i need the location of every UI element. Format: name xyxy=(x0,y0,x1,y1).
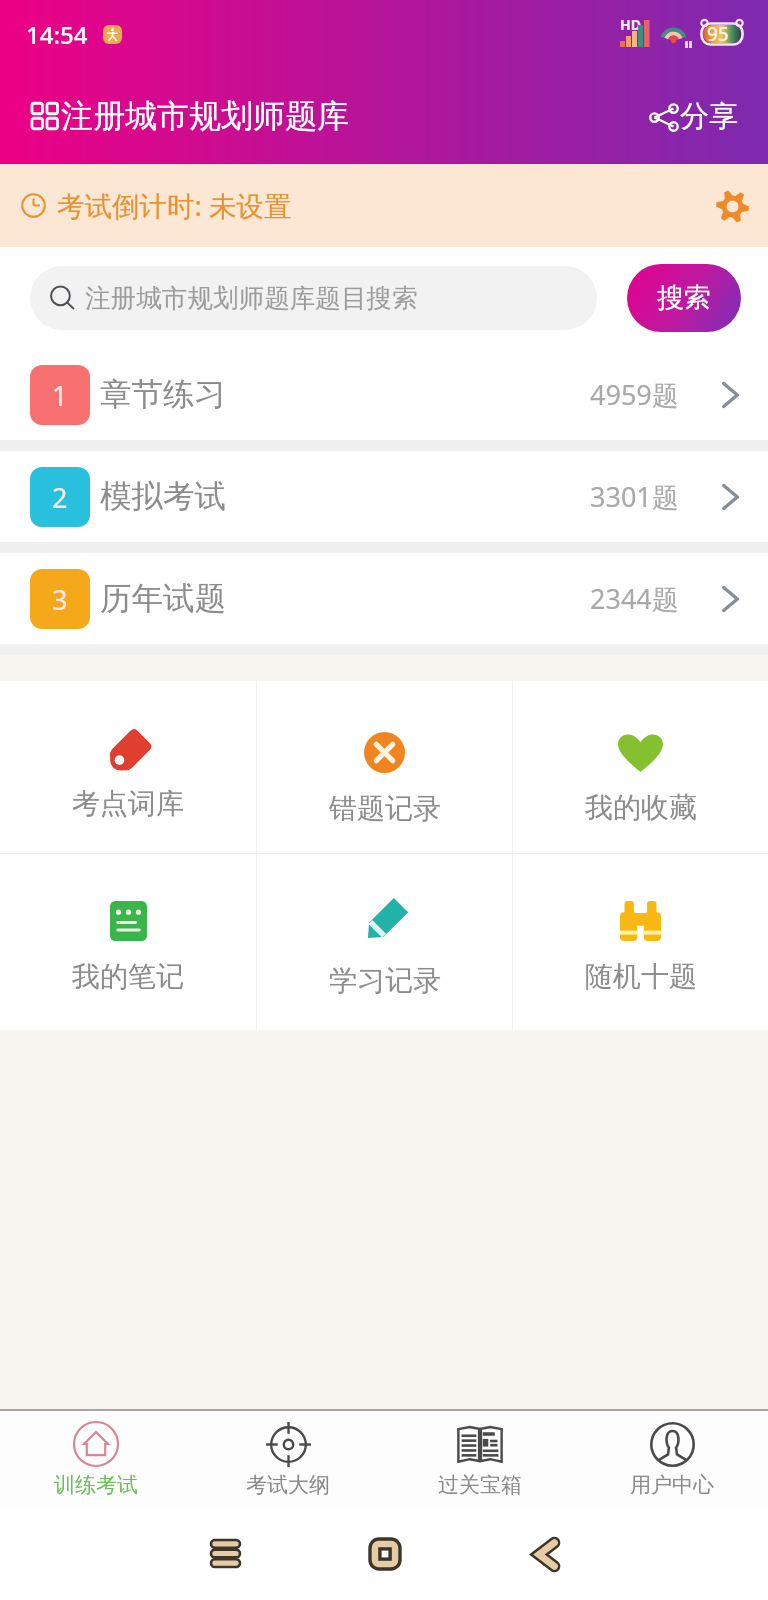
button[interactable]: Back xyxy=(521,1529,571,1579)
staticText: 分享 xyxy=(680,98,738,135)
staticText: 用户中心 xyxy=(630,1472,714,1498)
button[interactable]: Recents xyxy=(200,1529,251,1578)
staticText: 学习记录 xyxy=(329,963,441,998)
staticText: 2 xyxy=(52,479,68,516)
button[interactable]: 注册城市规划师题库题目搜索 xyxy=(30,266,597,330)
staticText: 随机十题 xyxy=(585,959,697,994)
staticText: 14:54 xyxy=(26,18,88,51)
staticText: 过关宝箱 xyxy=(438,1472,522,1498)
button[interactable]: 分享 xyxy=(646,92,742,141)
button[interactable]: Home xyxy=(360,1529,410,1579)
staticText: 模拟考试 xyxy=(100,477,226,517)
button[interactable]: 用户中心 xyxy=(576,1411,768,1507)
button[interactable]: 1 xyxy=(0,349,768,440)
staticText: 95 xyxy=(707,21,729,47)
staticText: 考点词库 xyxy=(72,786,184,821)
button[interactable]: 学习记录 xyxy=(257,854,512,1030)
button[interactable]: 训练考试 xyxy=(0,1411,192,1507)
button[interactable]: 我的笔记 xyxy=(0,854,256,1030)
staticText: 章节练习 xyxy=(100,375,226,415)
staticText: HD xyxy=(620,15,641,34)
button[interactable]: 3 xyxy=(0,553,768,644)
button[interactable]: 考试大纲 xyxy=(192,1411,384,1507)
staticText: 考试倒计时: 未设置 xyxy=(57,187,292,225)
staticText: 注册城市规划师题库 xyxy=(61,96,349,136)
button[interactable]: 考点词库 xyxy=(0,681,256,853)
staticText: 搜索 xyxy=(657,281,711,315)
button[interactable]: 我的收藏 xyxy=(513,681,768,853)
staticText: 我的笔记 xyxy=(72,959,184,994)
button[interactable]: 错题记录 xyxy=(257,681,512,853)
staticText: 3 xyxy=(52,581,68,618)
staticText: 训练考试 xyxy=(54,1472,138,1498)
staticText: 1 xyxy=(52,377,68,414)
button[interactable]: 过关宝箱 xyxy=(384,1411,576,1507)
staticText: 我的收藏 xyxy=(585,790,697,825)
button[interactable]: Settings xyxy=(710,184,754,228)
staticText: 注册城市规划师题库题目搜索 xyxy=(85,282,418,314)
button[interactable]: 2 xyxy=(0,451,768,542)
button[interactable]: 搜索 xyxy=(627,264,741,332)
staticText: 历年试题 xyxy=(100,579,226,619)
button[interactable]: 随机十题 xyxy=(513,854,768,1030)
staticText: 3301题 xyxy=(590,478,679,515)
staticText: 2344题 xyxy=(590,580,679,617)
staticText: 错题记录 xyxy=(329,791,441,826)
staticText: 考试大纲 xyxy=(246,1472,330,1498)
staticText: 4959题 xyxy=(590,376,679,413)
